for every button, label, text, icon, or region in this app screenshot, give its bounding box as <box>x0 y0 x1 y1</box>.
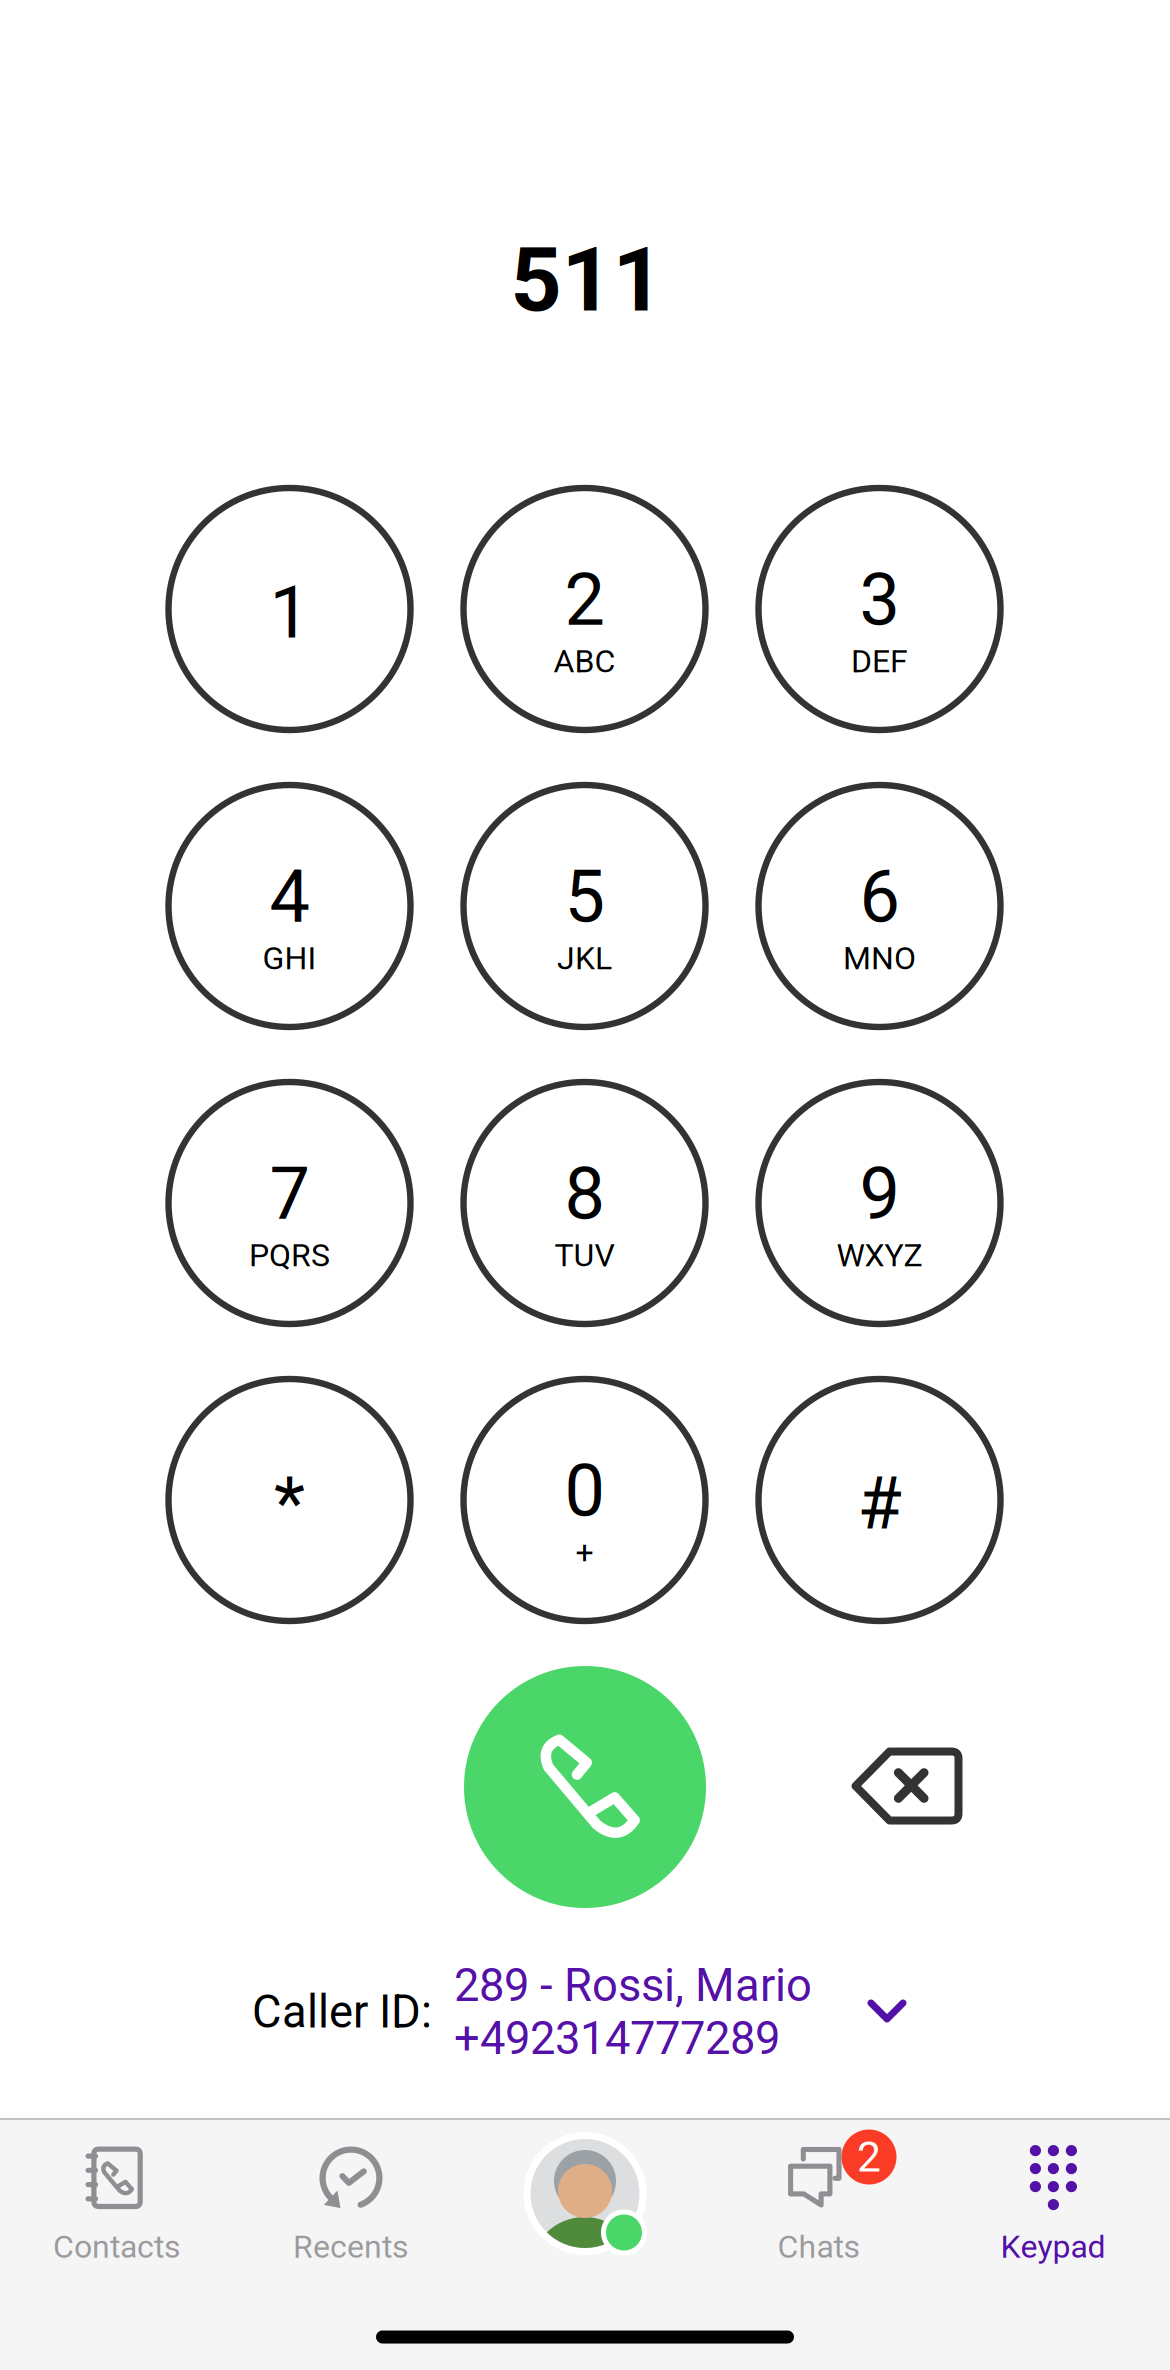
button[interactable]: 2 <box>702 2118 936 2370</box>
staticText: MNO <box>843 939 916 977</box>
staticText: Keypad <box>1000 2228 1105 2265</box>
staticText: 289 - Rossi, Mario <box>454 1959 812 2012</box>
staticText: Contacts <box>53 2228 181 2265</box>
button[interactable]: 3 <box>758 488 1000 730</box>
staticText: Chats <box>777 2228 860 2265</box>
staticText: DEF <box>851 642 908 680</box>
button[interactable]: # <box>758 1379 1000 1621</box>
button[interactable]: 6 <box>758 785 1000 1027</box>
staticText: TUV <box>554 1236 614 1274</box>
button[interactable]: Recents <box>234 2118 468 2370</box>
staticText: JKL <box>557 939 612 977</box>
staticText: # <box>857 1462 901 1546</box>
button[interactable]: 1 <box>168 488 410 730</box>
button[interactable]: 2 <box>463 488 705 730</box>
button[interactable]: 5 <box>463 785 705 1027</box>
staticText: +492314777289 <box>454 2012 780 2065</box>
button[interactable]: Delete <box>832 1721 982 1851</box>
button[interactable]: Keypad <box>936 2118 1170 2370</box>
button[interactable]: Caller ID: <box>252 1959 906 2065</box>
staticText: 2 <box>857 2132 881 2182</box>
staticText: Caller ID: <box>252 1985 432 2038</box>
button[interactable]: 0 <box>463 1379 705 1621</box>
button[interactable]: 8 <box>463 1082 705 1324</box>
staticText: 0 <box>564 1449 604 1533</box>
button[interactable]: 9 <box>758 1082 1000 1324</box>
button[interactable]: 7 <box>168 1082 410 1324</box>
button[interactable]: * <box>168 1379 410 1621</box>
staticText: 3 <box>859 558 899 642</box>
button[interactable]: Contacts <box>0 2118 234 2370</box>
staticText: 2 <box>564 558 604 642</box>
staticText: 9 <box>859 1152 899 1236</box>
staticText: + <box>575 1533 593 1571</box>
staticText: ABC <box>553 642 615 680</box>
button[interactable]: Profile <box>468 2118 702 2370</box>
staticText: 4 <box>269 855 309 939</box>
staticText: PQRS <box>249 1236 330 1274</box>
staticText: 511 <box>510 228 663 332</box>
button[interactable]: Call <box>464 1666 706 1908</box>
staticText: 7 <box>269 1152 309 1236</box>
button[interactable]: 4 <box>168 785 410 1027</box>
staticText: 6 <box>859 855 899 939</box>
staticText: 1 <box>269 571 309 655</box>
staticText: GHI <box>262 939 316 977</box>
staticText: Recents <box>293 2228 409 2265</box>
staticText: * <box>274 1462 305 1546</box>
staticText: WXYZ <box>836 1236 922 1274</box>
staticText: 5 <box>564 855 604 939</box>
staticText: 8 <box>564 1152 604 1236</box>
